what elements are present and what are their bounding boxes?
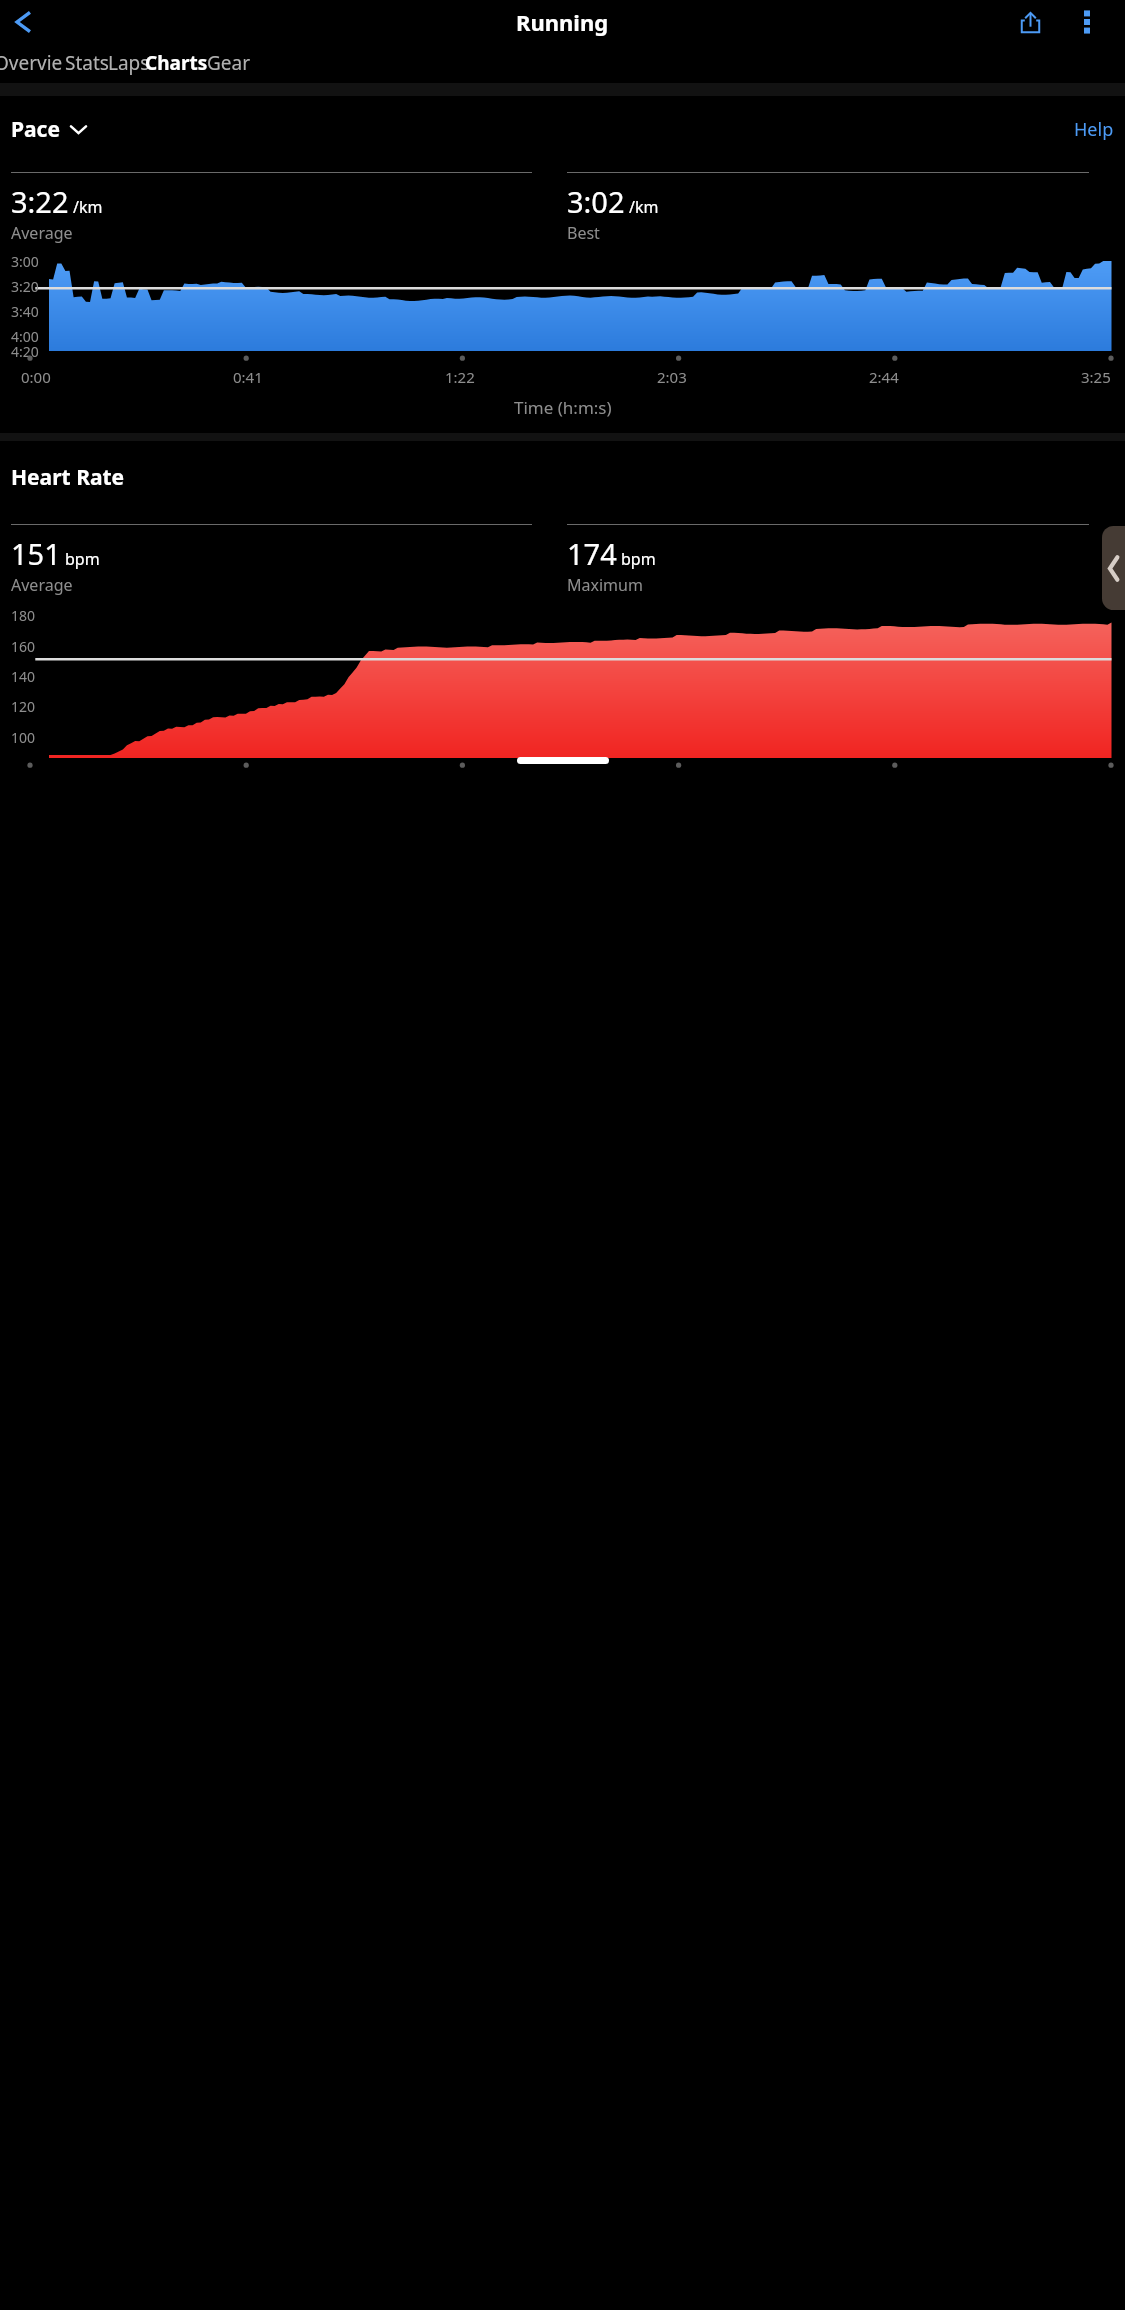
staticText: 3:22	[11, 182, 69, 221]
staticText: 0:41	[233, 367, 263, 387]
staticText: Stats	[65, 50, 109, 76]
button[interactable]: Edge panel	[1102, 526, 1125, 610]
staticText: Time (h:m:s)	[514, 396, 612, 419]
staticText: 2:44	[869, 367, 899, 387]
button[interactable]: Gear	[191, 45, 267, 81]
staticText: 160	[11, 637, 36, 656]
staticText: 3:40	[11, 302, 39, 321]
button[interactable]: Help	[1074, 117, 1114, 142]
staticText: 3:00	[11, 252, 39, 271]
staticText: 100	[11, 728, 36, 747]
staticText: 0:00	[21, 367, 51, 387]
staticText: /km	[73, 196, 103, 218]
button[interactable]: Share	[1010, 2, 1050, 42]
staticText: 3:20	[11, 277, 39, 296]
staticText: 4:20	[11, 342, 39, 361]
staticText: Heart Rate	[11, 463, 125, 492]
staticText: Best	[567, 222, 600, 244]
staticText: Help	[1074, 117, 1114, 142]
button[interactable]: Laps	[91, 45, 167, 81]
staticText: 1:22	[445, 367, 475, 387]
staticText: bpm	[65, 548, 100, 570]
staticText: 140	[11, 667, 36, 686]
staticText: Maximum	[567, 574, 643, 596]
staticText: 2:03	[657, 367, 687, 387]
staticText: 120	[11, 697, 36, 716]
staticText: 3:02	[567, 182, 625, 221]
button[interactable]: Pace	[11, 115, 86, 144]
button[interactable]: Back	[8, 7, 38, 37]
staticText: 180	[11, 606, 36, 625]
button[interactable]: Overview	[0, 45, 70, 81]
button[interactable]: More options	[1067, 2, 1107, 42]
staticText: /km	[629, 196, 659, 218]
staticText: Average	[11, 222, 73, 244]
staticText: 3:25	[1081, 367, 1111, 387]
staticText: bpm	[621, 548, 656, 570]
staticText: 151	[11, 534, 61, 573]
staticText: Overview	[0, 50, 70, 81]
staticText: 174	[567, 534, 617, 573]
staticText: Pace	[11, 115, 60, 144]
staticText: Running	[516, 7, 609, 37]
staticText: Charts	[145, 50, 208, 76]
staticText: Gear	[207, 50, 251, 76]
button[interactable]: Stats	[49, 45, 125, 81]
staticText: 4:00	[11, 327, 39, 346]
button[interactable]: Charts	[138, 45, 214, 81]
staticText: Laps	[108, 50, 150, 76]
staticText: Average	[11, 574, 73, 596]
